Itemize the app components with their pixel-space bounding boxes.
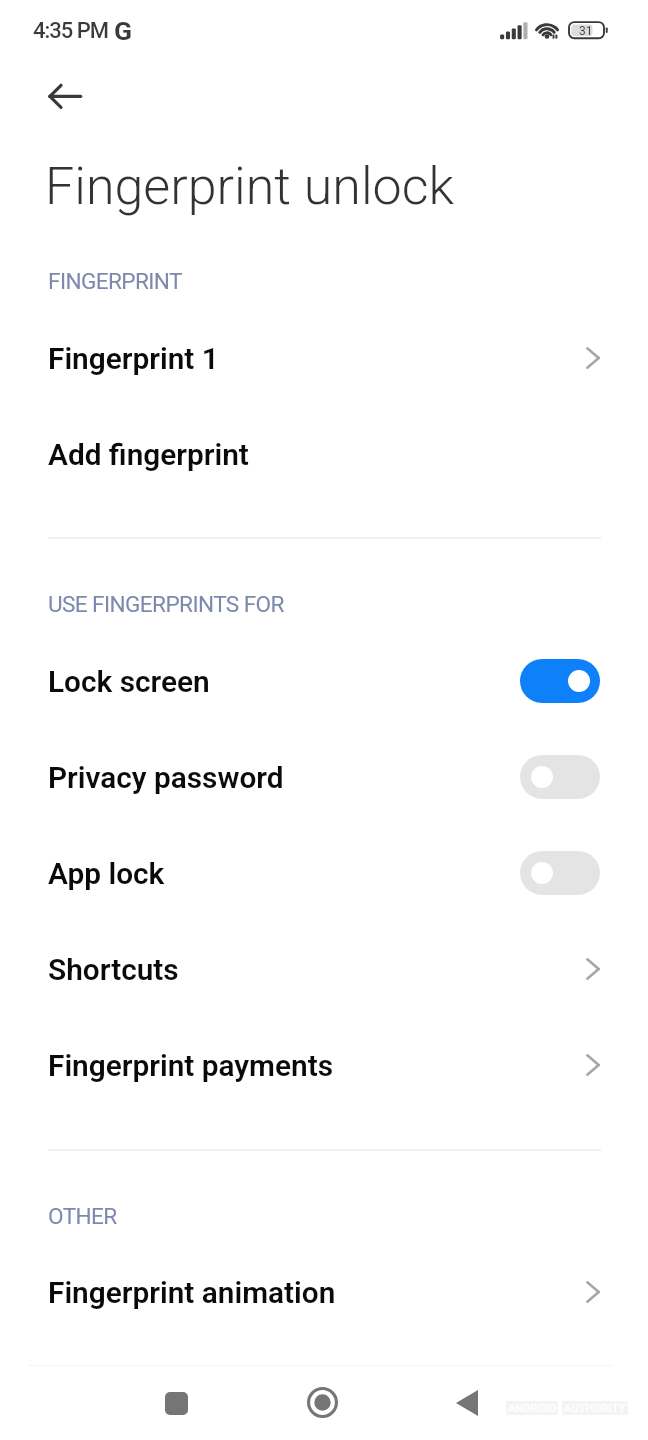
staticText: Add fingerprint xyxy=(48,437,249,472)
button[interactable]: Privacy password xyxy=(0,729,648,825)
button[interactable]: Shortcuts xyxy=(0,921,648,1017)
button[interactable]: Privacy password xyxy=(520,755,600,799)
staticText: Privacy password xyxy=(48,760,284,795)
staticText: OTHER xyxy=(48,1203,117,1229)
staticText: Fingerprint payments xyxy=(48,1048,333,1083)
button[interactable]: Back xyxy=(419,1378,515,1427)
staticText: Lock screen xyxy=(48,664,210,699)
button[interactable]: Fingerprint 1 xyxy=(0,310,648,406)
staticText: USE FINGERPRINTS FOR xyxy=(48,591,284,617)
button[interactable]: Add fingerprint xyxy=(0,406,648,502)
button[interactable]: Fingerprint payments xyxy=(0,1017,648,1113)
button[interactable]: Home xyxy=(274,1378,370,1427)
button[interactable]: Back xyxy=(41,72,89,120)
staticText: G xyxy=(114,15,133,46)
staticText: App lock xyxy=(48,856,165,891)
button[interactable]: Fingerprint animation xyxy=(0,1244,648,1340)
button[interactable]: App lock xyxy=(0,825,648,921)
button[interactable]: Lock screen xyxy=(520,659,600,703)
staticText: FINGERPRINT xyxy=(48,268,182,294)
button[interactable]: App lock xyxy=(520,851,600,895)
staticText: Shortcuts xyxy=(48,952,179,987)
staticText: AUTHORITY xyxy=(564,1402,626,1415)
staticText: Fingerprint animation xyxy=(48,1275,336,1310)
staticText: 4:35 PM xyxy=(33,18,109,44)
staticText: Fingerprint 1 xyxy=(48,341,219,376)
button[interactable]: Lock screen xyxy=(0,633,648,729)
staticText: ANDROID xyxy=(508,1402,556,1415)
button[interactable]: Recent apps xyxy=(128,1379,224,1427)
staticText: Fingerprint unlock xyxy=(45,156,454,217)
staticText: 31 xyxy=(579,24,593,38)
